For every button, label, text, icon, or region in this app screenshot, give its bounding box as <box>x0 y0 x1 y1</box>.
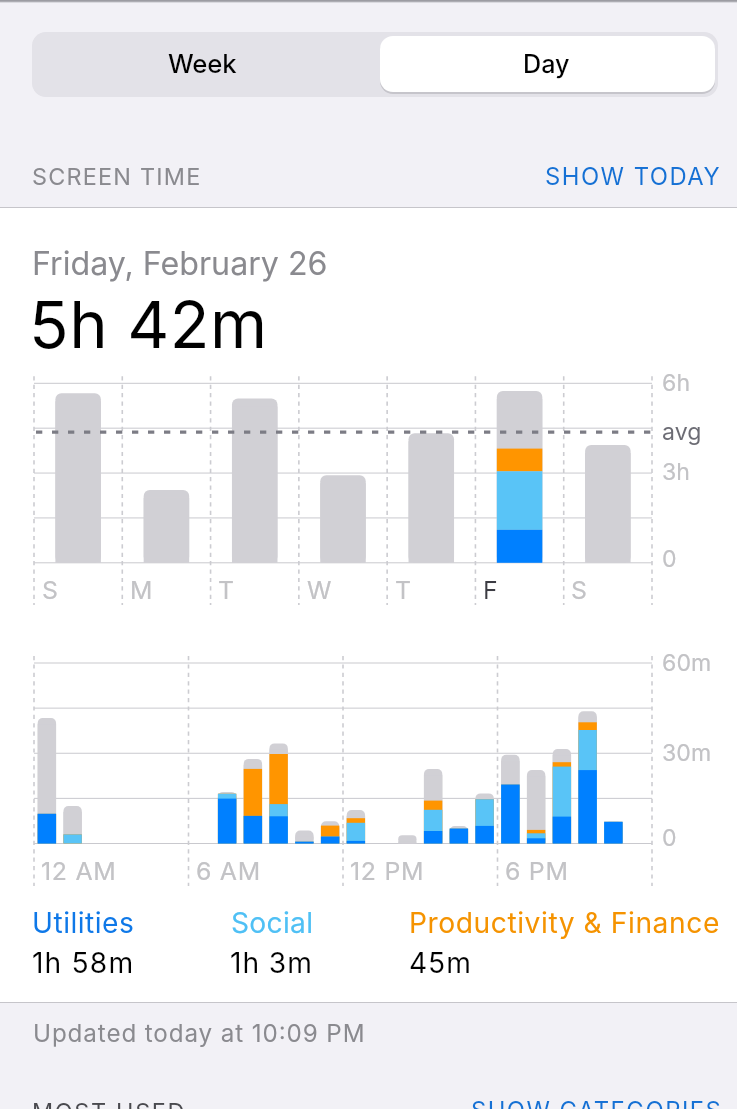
button[interactable] <box>26 152 226 200</box>
staticText: T <box>218 575 235 605</box>
staticText: 5h 42m <box>29 285 268 364</box>
staticText: avg <box>662 418 702 446</box>
button[interactable] <box>540 152 724 200</box>
button[interactable] <box>466 1092 724 1109</box>
staticText: MOST USED <box>32 1097 187 1109</box>
staticText: 6 AM <box>196 856 261 886</box>
staticText: W <box>307 575 332 605</box>
staticText: 3h <box>662 458 691 486</box>
staticText: 30m <box>662 739 712 767</box>
staticText: 1h 58m <box>32 946 135 980</box>
staticText: F <box>483 575 498 605</box>
staticText: S <box>42 575 58 605</box>
staticText: 0 <box>662 545 677 573</box>
staticText: T <box>395 575 412 605</box>
staticText: Productivity & Finance <box>409 906 720 940</box>
staticText: SCREEN TIME <box>32 162 202 190</box>
staticText: Social <box>231 906 314 940</box>
button[interactable]: Day <box>375 32 718 97</box>
staticText: 6 PM <box>505 856 569 886</box>
staticText: 1h 3m <box>230 946 313 980</box>
staticText: Week <box>168 48 237 79</box>
button[interactable]: Week <box>32 32 375 97</box>
staticText: 60m <box>662 649 712 677</box>
button[interactable] <box>30 906 150 978</box>
staticText: Friday, February 26 <box>32 244 328 283</box>
button[interactable] <box>228 906 328 978</box>
staticText: 6h <box>662 369 691 397</box>
staticText: Day <box>523 49 570 79</box>
button[interactable] <box>407 906 717 978</box>
staticText: 0 <box>662 824 677 852</box>
staticText: 45m <box>409 946 472 980</box>
staticText: M <box>130 575 153 605</box>
staticText: Utilities <box>32 906 135 940</box>
staticText: SHOW CATEGORIES <box>471 1096 723 1109</box>
staticText: 12 AM <box>41 856 117 886</box>
staticText: S <box>571 575 587 605</box>
staticText: Updated today at 10:09 PM <box>33 1019 366 1048</box>
staticText: SHOW TODAY <box>545 162 722 191</box>
staticText: 12 PM <box>350 856 425 886</box>
